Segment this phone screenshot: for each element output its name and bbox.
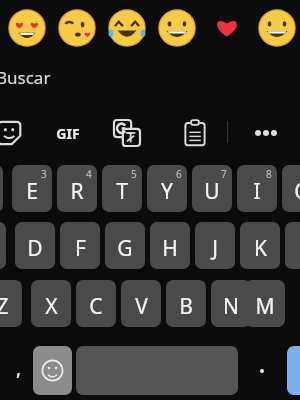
button[interactable]: Y <box>147 165 187 212</box>
staticText: Buscar <box>0 66 51 89</box>
staticText: R <box>70 177 84 206</box>
staticText: 4 <box>86 167 92 181</box>
button[interactable]: Emoji <box>253 4 300 52</box>
button[interactable]: S <box>0 222 6 269</box>
button[interactable]: B <box>166 280 206 327</box>
button[interactable]: J <box>195 222 235 269</box>
staticText: F <box>75 234 86 263</box>
button[interactable]: T <box>102 165 142 212</box>
staticText: E <box>26 177 38 206</box>
staticText: U <box>204 177 220 206</box>
button[interactable]: Comma <box>0 346 30 395</box>
button[interactable]: Emoji <box>3 4 51 52</box>
staticText: V <box>135 292 148 321</box>
staticText: 8 <box>266 167 272 181</box>
button[interactable]: D <box>15 222 55 269</box>
button[interactable]: More options <box>250 118 282 148</box>
staticText: Z <box>0 292 9 321</box>
staticText: N <box>223 292 239 321</box>
staticText: C <box>89 292 103 321</box>
staticText: T <box>116 177 128 206</box>
staticText: D <box>27 234 43 263</box>
button[interactable]: X <box>31 280 71 327</box>
staticText: 3 <box>41 167 47 181</box>
staticText: , <box>16 355 22 381</box>
button[interactable]: Z <box>0 280 22 327</box>
staticText: GIF <box>56 124 80 143</box>
button[interactable]: C <box>76 280 116 327</box>
button[interactable]: F <box>60 222 100 269</box>
staticText: 6 <box>176 167 182 181</box>
staticText: H <box>162 234 178 263</box>
staticText: 5 <box>131 167 137 181</box>
button[interactable]: Buscar <box>0 62 144 92</box>
button[interactable]: K <box>240 222 280 269</box>
button[interactable]: Space <box>76 346 238 395</box>
staticText: G <box>117 234 133 263</box>
button[interactable]: V <box>121 280 161 327</box>
button[interactable]: Emoji <box>203 4 251 52</box>
staticText: 7 <box>221 167 227 181</box>
staticText: M <box>255 292 275 321</box>
button[interactable]: L <box>285 222 300 269</box>
staticText: J <box>212 234 218 263</box>
button[interactable]: R <box>57 165 97 212</box>
staticText: B <box>179 292 193 321</box>
button[interactable]: Emoji <box>103 4 151 52</box>
staticText: X <box>45 292 58 321</box>
button[interactable]: GIF <box>48 118 88 148</box>
button[interactable]: U <box>192 165 232 212</box>
button[interactable]: I <box>237 165 277 212</box>
button[interactable]: Enter <box>287 346 300 395</box>
staticText: I <box>253 177 261 206</box>
button[interactable]: G <box>105 222 145 269</box>
button[interactable]: Translate <box>114 120 140 146</box>
button[interactable]: O <box>282 165 300 212</box>
button[interactable]: Period <box>243 346 281 395</box>
button[interactable]: M <box>245 280 285 327</box>
staticText: Y <box>161 177 173 206</box>
button[interactable]: W <box>0 165 3 212</box>
staticText: O <box>294 177 300 206</box>
staticText: K <box>254 234 267 263</box>
button[interactable]: Emoji <box>53 4 101 52</box>
button[interactable]: Clipboard <box>182 119 208 147</box>
button[interactable]: N <box>211 280 251 327</box>
button[interactable]: H <box>150 222 190 269</box>
button[interactable]: Emoji <box>153 4 201 52</box>
button[interactable]: E <box>12 165 52 212</box>
button[interactable]: Stickers <box>0 118 28 148</box>
button[interactable]: Emoji keyboard <box>33 346 72 395</box>
